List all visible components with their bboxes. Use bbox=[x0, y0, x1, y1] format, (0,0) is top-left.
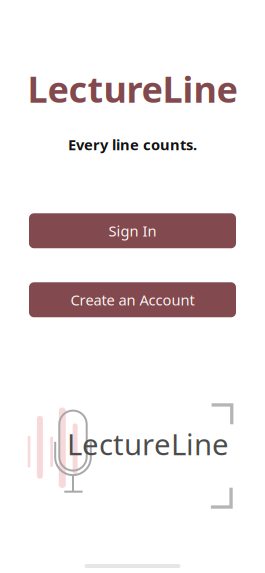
staticText: Create an Account bbox=[70, 290, 194, 309]
button[interactable]: Create an Account bbox=[29, 282, 236, 317]
staticText: Sign In bbox=[108, 221, 156, 240]
staticText: Every line counts. bbox=[68, 135, 197, 154]
staticText: LectureLine bbox=[27, 65, 237, 113]
button[interactable]: Sign In bbox=[29, 213, 236, 248]
staticText: LectureLine bbox=[67, 424, 229, 463]
